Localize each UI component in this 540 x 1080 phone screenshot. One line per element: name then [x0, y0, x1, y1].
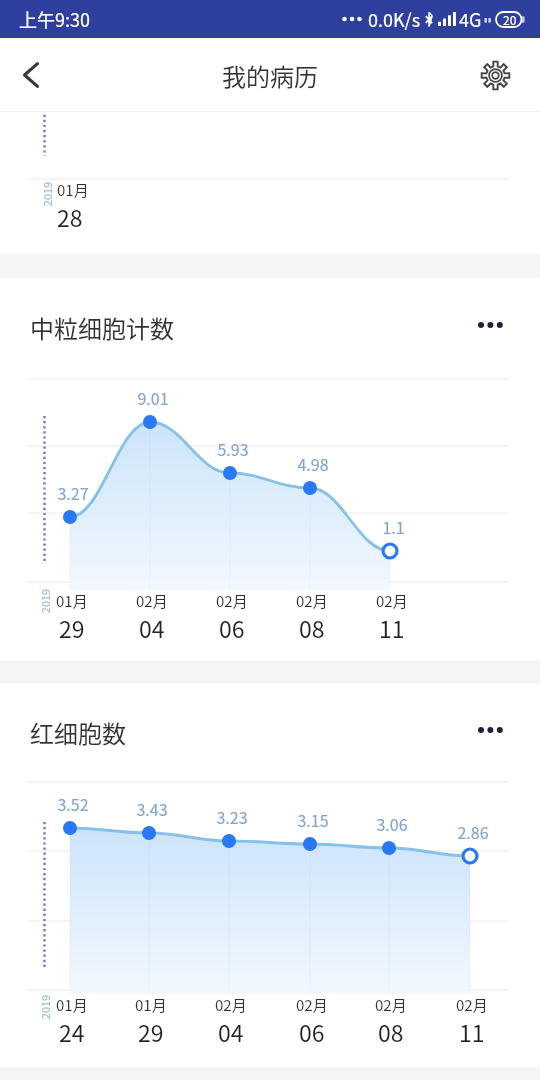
staticText: 06 — [219, 611, 245, 644]
staticText: 29 — [59, 611, 85, 644]
staticText: 06 — [299, 1015, 325, 1048]
button[interactable]: 中粒细胞计数 — [0, 278, 540, 661]
staticText: 2.86 — [457, 820, 489, 840]
staticText: 1.1 — [382, 515, 405, 535]
staticText: 2019 — [39, 174, 55, 214]
staticText: 3.06 — [376, 812, 408, 832]
staticText: 2019 — [37, 581, 53, 621]
button[interactable]: More options — [465, 711, 517, 749]
staticText: 02月 — [456, 994, 488, 1016]
staticText: 02月 — [296, 590, 328, 612]
staticText: 2019 — [37, 987, 53, 1027]
staticText: 3.15 — [297, 808, 329, 828]
staticText: 02月 — [215, 994, 247, 1016]
staticText: 5.93 — [217, 437, 249, 457]
staticText: 9.01 — [137, 386, 169, 406]
staticText: 29 — [138, 1015, 164, 1048]
staticText: 08 — [378, 1015, 404, 1048]
staticText: 中粒细胞计数 — [30, 310, 174, 345]
staticText: 我的病历 — [222, 58, 318, 93]
staticText: 4G — [459, 6, 482, 32]
staticText: 02月 — [216, 590, 248, 612]
staticText: 24 — [59, 1015, 85, 1048]
staticText: 02月 — [375, 994, 407, 1016]
staticText: 02月 — [296, 994, 328, 1016]
staticText: 20 — [503, 11, 517, 28]
staticText: 11 — [459, 1015, 485, 1048]
staticText: 11 — [379, 611, 405, 644]
staticText: 28 — [57, 200, 83, 233]
button[interactable]: Settings — [470, 50, 520, 100]
staticText: 4.98 — [297, 452, 329, 472]
staticText: 上午9:30 — [19, 6, 90, 32]
staticText: 3.52 — [57, 792, 89, 812]
staticText: 04 — [139, 611, 165, 644]
staticText: 08 — [299, 611, 325, 644]
staticText: 3.27 — [57, 481, 89, 501]
staticText: 01月 — [57, 179, 89, 201]
button[interactable]: More options — [465, 306, 517, 344]
staticText: 01月 — [56, 994, 88, 1016]
staticText: 04 — [218, 1015, 244, 1048]
staticText: 01月 — [135, 994, 167, 1016]
button[interactable]: 红细胞数 — [0, 683, 540, 1067]
staticText: 0.0K/s — [368, 6, 421, 32]
button[interactable]: Back — [6, 50, 56, 100]
staticText: 红细胞数 — [30, 715, 126, 750]
staticText: 02月 — [376, 590, 408, 612]
staticText: 02月 — [136, 590, 168, 612]
staticText: 01月 — [56, 590, 88, 612]
staticText: 3.43 — [136, 797, 168, 817]
staticText: 3.23 — [216, 805, 248, 825]
